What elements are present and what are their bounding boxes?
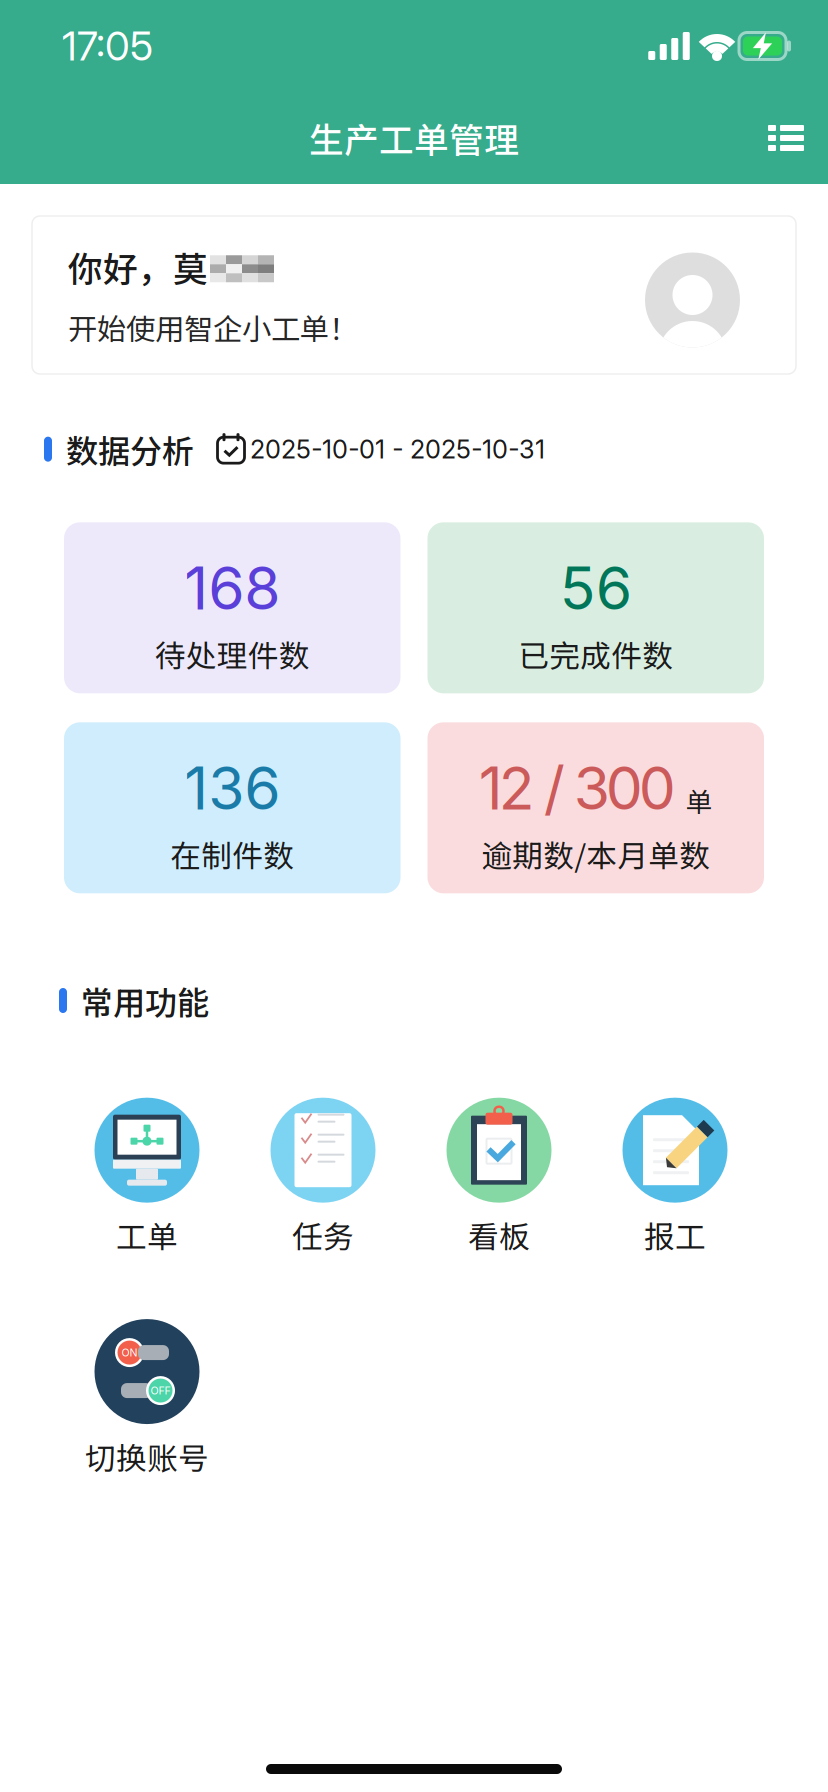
staticText: 看板: [468, 1213, 530, 1257]
staticText: 12 / 300: [479, 753, 676, 824]
button[interactable]: 56: [427, 522, 764, 693]
button[interactable]: 你好，莫: [32, 216, 796, 374]
button[interactable]: 任务: [235, 1098, 411, 1257]
staticText: 单: [686, 781, 713, 820]
staticText: 待处理件数: [155, 632, 310, 676]
button[interactable]: 看板: [411, 1098, 587, 1257]
button[interactable]: 168: [64, 522, 400, 693]
staticText: 56: [560, 553, 632, 624]
staticText: 你好，莫: [68, 242, 208, 292]
staticText: 常用功能: [81, 977, 209, 1024]
button[interactable]: 菜单: [754, 111, 818, 165]
staticText: 生产工单管理: [309, 113, 519, 163]
staticText: OFF: [150, 1384, 170, 1397]
staticText: 切换账号: [85, 1434, 209, 1478]
staticText: 136: [184, 753, 280, 824]
staticText: 逾期数/本月单数: [481, 832, 710, 876]
button[interactable]: 工单: [59, 1098, 235, 1257]
staticText: 17:05: [62, 22, 153, 70]
button[interactable]: 136: [64, 722, 400, 893]
button[interactable]: 12 / 300: [427, 722, 764, 893]
staticText: 任务: [292, 1213, 354, 1257]
staticText: 开始使用智企小工单！: [68, 306, 358, 348]
staticText: ON: [121, 1346, 137, 1359]
staticText: 已完成件数: [518, 632, 673, 676]
staticText: 2025-10-01 - 2025-10-31: [250, 434, 545, 464]
staticText: 报工: [644, 1213, 706, 1257]
button[interactable]: 报工: [587, 1098, 763, 1257]
staticText: 数据分析: [66, 426, 194, 472]
staticText: 168: [184, 553, 280, 624]
staticText: 工单: [116, 1213, 178, 1257]
button[interactable]: ON: [59, 1319, 235, 1478]
staticText: 在制件数: [170, 832, 294, 876]
